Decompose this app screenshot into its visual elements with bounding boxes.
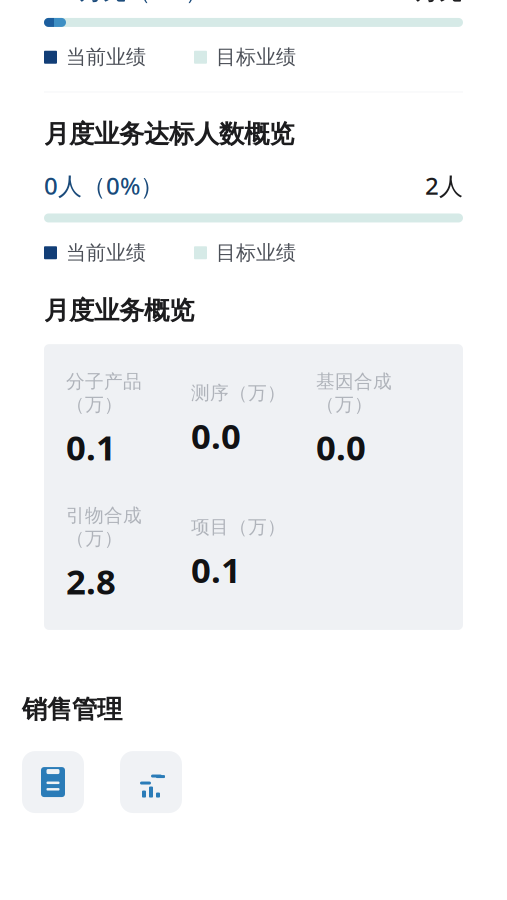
staticText: 项目（万） [191,515,286,538]
staticText: 销售管理 [22,694,122,725]
staticText: 测序（万） [191,382,286,404]
staticText: 基因合成（万） [316,370,392,416]
staticText: 0人（0%） [44,170,164,201]
staticText: 0.1 [191,546,241,592]
staticText: 目标业绩 [216,240,296,265]
staticText: 引物合成（万） [66,504,142,550]
staticText: 3.0万元（5%） [44,0,209,6]
staticText: 月度业务概览 [44,295,194,326]
staticText: 2.8 [66,558,116,604]
staticText: 0.0 [316,424,366,470]
staticText: 当前业绩 [66,240,146,265]
staticText: 当前业绩 [66,45,146,69]
staticText: 0.1 [66,424,116,470]
staticText: 60.0万元 [366,0,463,6]
button[interactable]: 销售统计 [120,751,182,813]
staticText: 月度业务达标人数概览 [44,118,294,150]
staticText: 分子产品（万） [66,370,142,416]
staticText: 2人 [425,170,463,201]
staticText: 目标业绩 [216,45,296,69]
staticText: 0.0 [191,413,241,459]
button[interactable]: 销售订单 [22,751,84,813]
